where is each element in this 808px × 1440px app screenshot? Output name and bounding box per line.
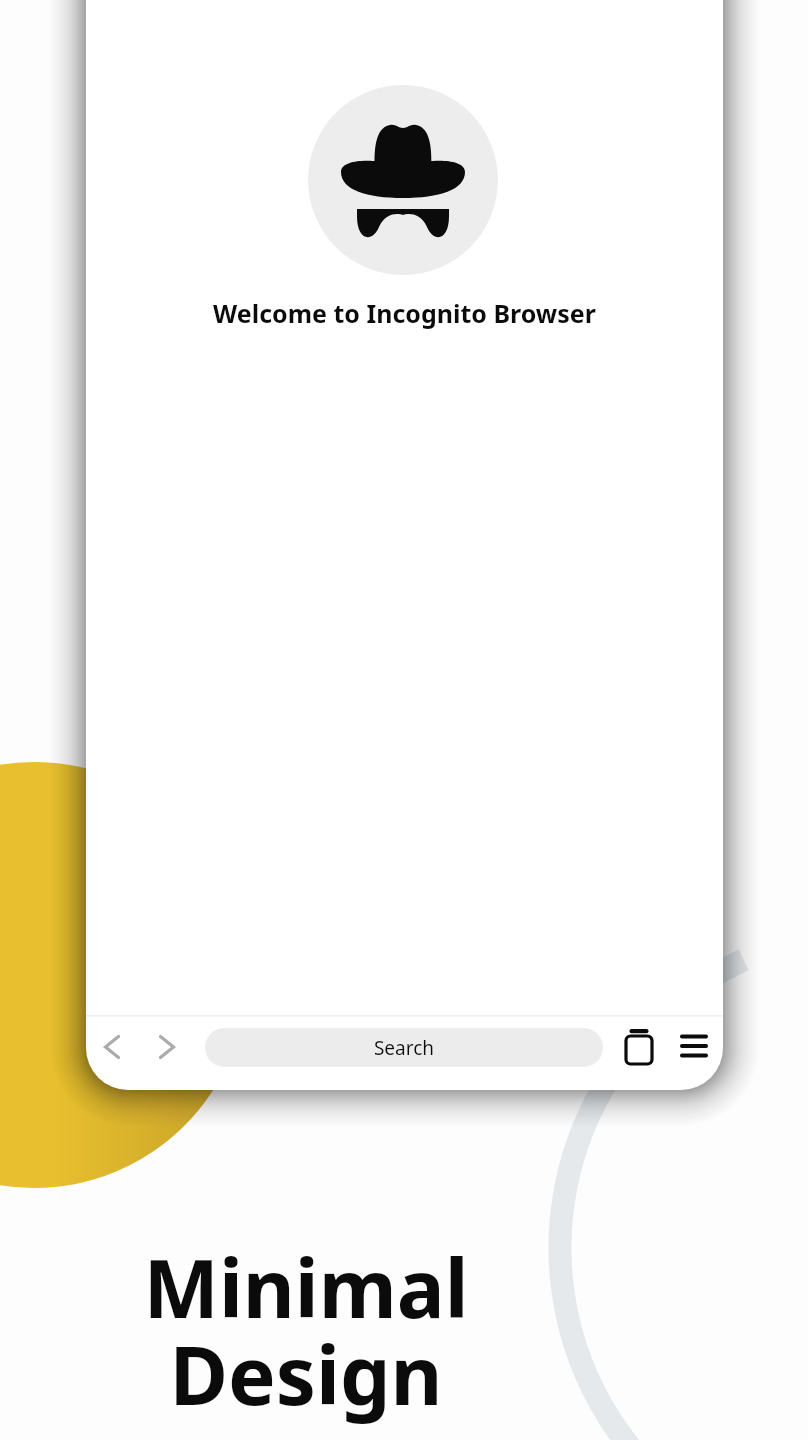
staticText: Welcome to Incognito Browser	[86, 296, 723, 330]
staticText: Search	[205, 1035, 603, 1061]
button[interactable]	[205, 1028, 603, 1067]
button[interactable]: Menu	[670, 1022, 720, 1072]
staticText: Minimal Design	[0, 1232, 612, 1429]
button[interactable]: Tabs, 1 open	[615, 1022, 665, 1072]
button[interactable]: Back	[90, 1022, 138, 1072]
button[interactable]: Forward	[145, 1022, 193, 1072]
